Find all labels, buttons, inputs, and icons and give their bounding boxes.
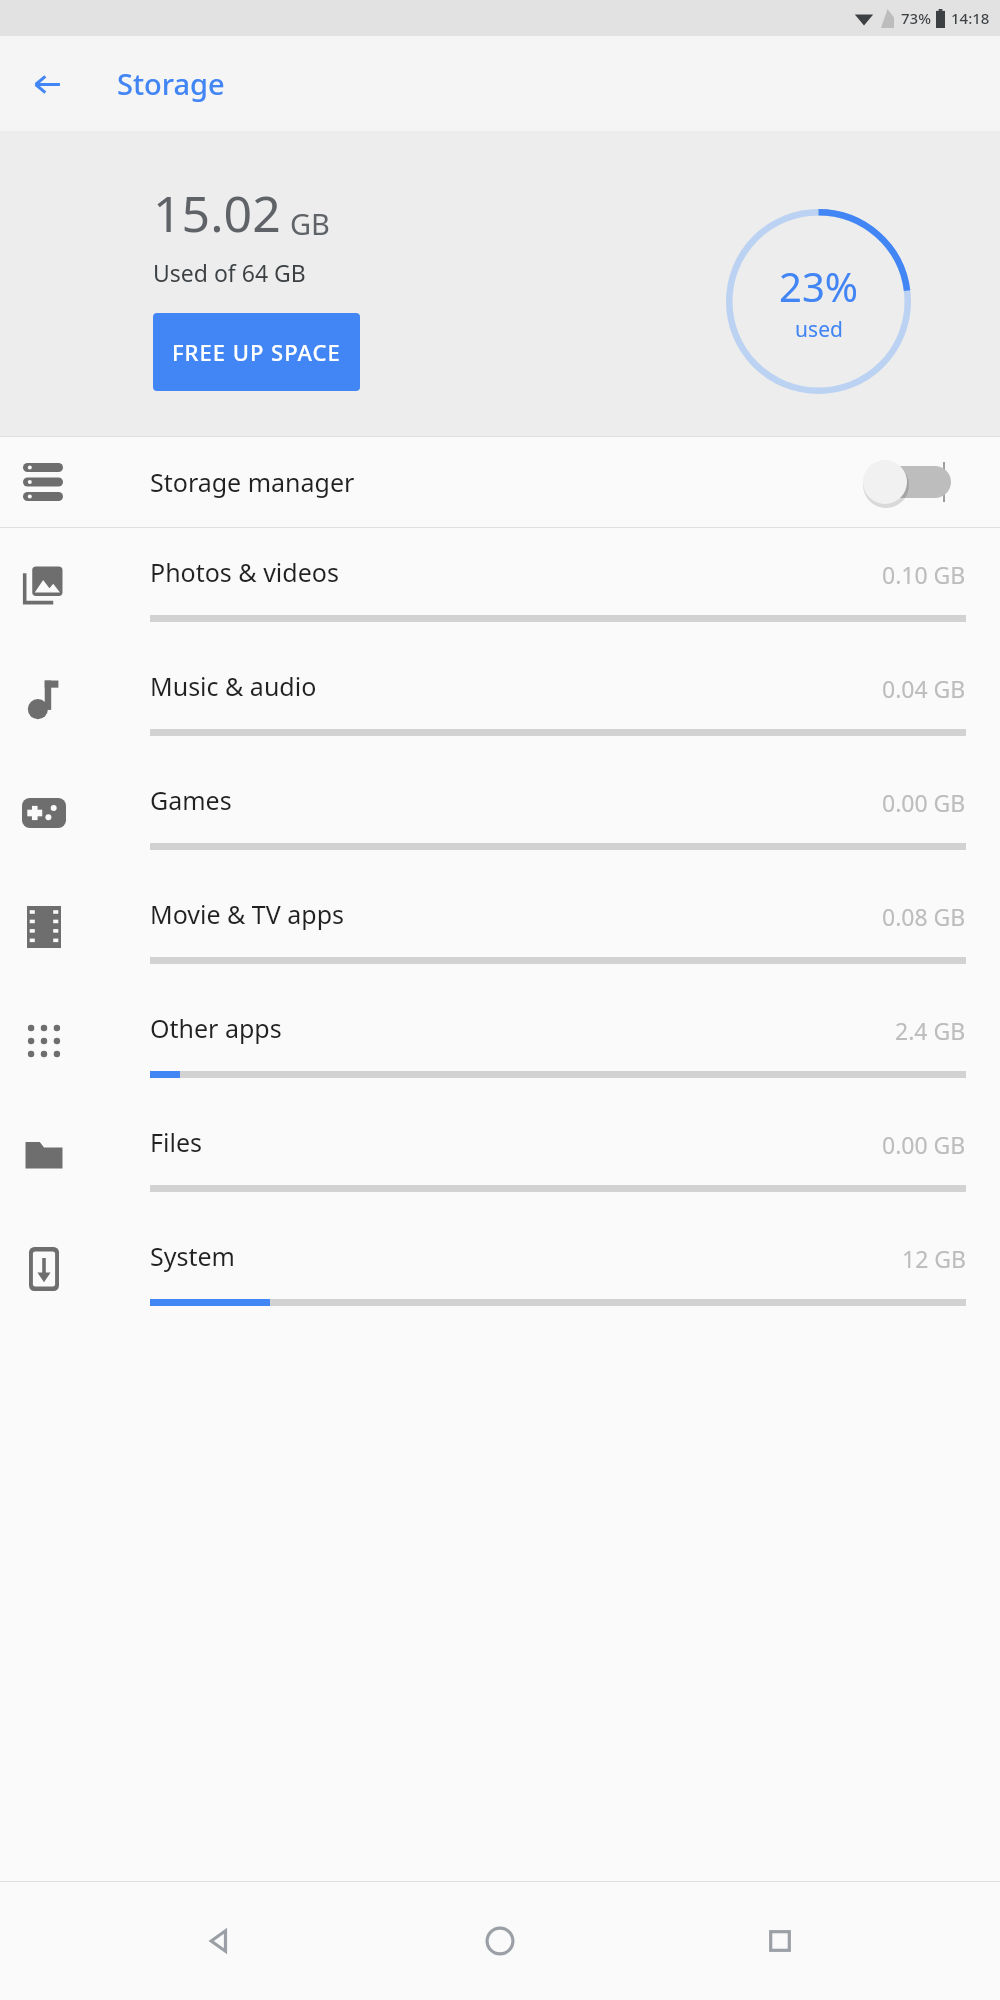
staticText: 0.00 GB [882,1129,966,1160]
button[interactable]: Back [178,1901,258,1981]
button[interactable]: Storage manager toggle [865,447,965,517]
staticText: 14:18 [951,8,990,28]
staticText: used [795,315,843,344]
staticText: FREE UP SPACE [172,337,341,367]
staticText: Movie & TV apps [150,897,345,931]
staticText: 0.10 GB [882,559,966,590]
staticText: Storage manager [150,465,355,499]
button[interactable]: Music & audio [0,642,1000,756]
staticText: 23% [779,259,858,313]
staticText: 0.04 GB [882,673,966,704]
staticText: Games [150,783,232,817]
staticText: 15.02 [153,179,281,247]
staticText: 73% [901,8,931,28]
staticText: Files [150,1125,202,1159]
staticText: 12 GB [902,1243,966,1274]
button[interactable]: Recent apps [740,1901,820,1981]
staticText: Photos & videos [150,555,339,589]
staticText: Music & audio [150,669,317,703]
button[interactable]: FREE UP SPACE [153,313,360,391]
button[interactable]: System [0,1212,1000,1326]
button[interactable]: Files [0,1098,1000,1212]
button[interactable]: Games [0,756,1000,870]
staticText: GB [290,204,330,243]
button[interactable]: Home [460,1901,540,1981]
button[interactable]: Storage manager [0,437,1000,527]
staticText: Storage [117,64,225,103]
staticText: 0.00 GB [882,787,966,818]
button[interactable]: Movie & TV apps [0,870,1000,984]
staticText: System [150,1239,235,1273]
staticText: 0.08 GB [882,901,966,932]
staticText: Used of 64 GB [153,257,306,288]
button[interactable]: Photos & videos [0,528,1000,642]
staticText: 2.4 GB [895,1015,966,1046]
button[interactable]: Back [20,57,74,111]
staticText: Other apps [150,1011,282,1045]
button[interactable]: Other apps [0,984,1000,1098]
